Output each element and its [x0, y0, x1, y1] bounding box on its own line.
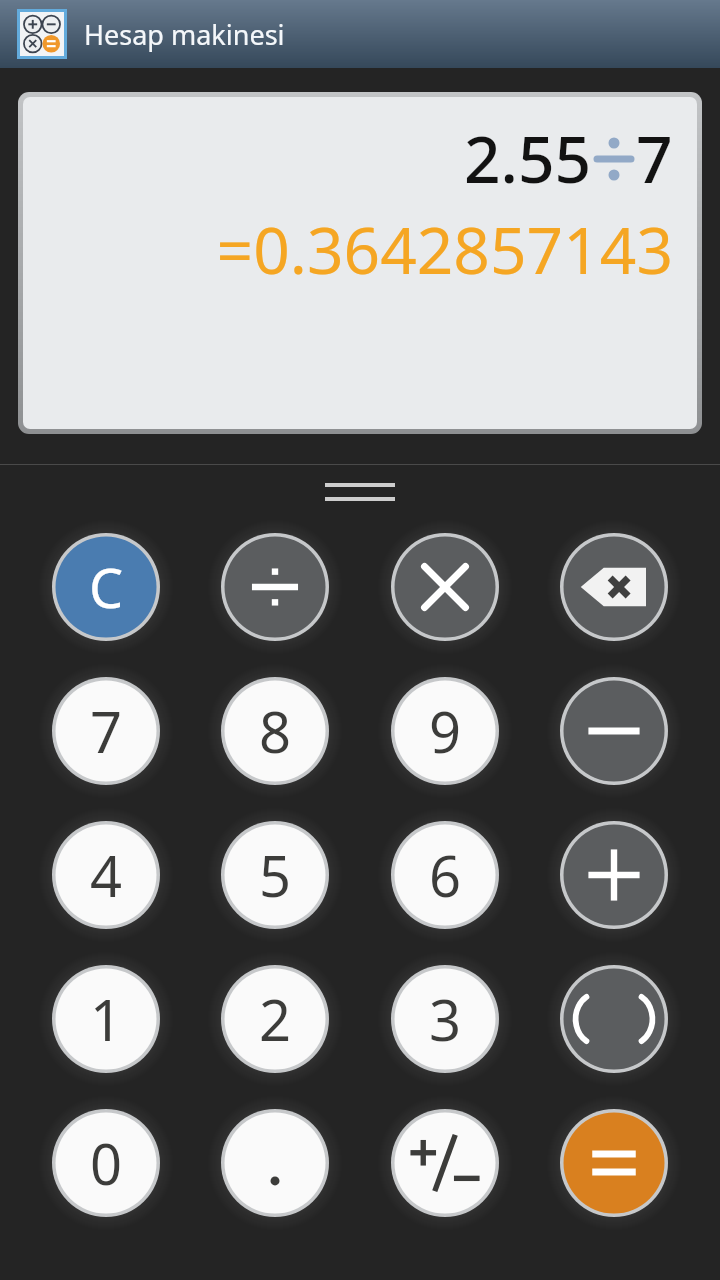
staticText: 7 [636, 115, 673, 202]
staticText: 4 [90, 837, 123, 913]
staticText: 3 [429, 981, 462, 1057]
staticText: 2 [259, 981, 292, 1057]
staticText: 2.55 [464, 115, 592, 202]
button[interactable]: 0 [42, 1099, 170, 1227]
button[interactable]: 9 [381, 667, 509, 795]
button[interactable]: 3 [381, 955, 509, 1083]
staticText: 7 [90, 693, 123, 769]
button[interactable]: C [42, 523, 170, 651]
button[interactable]: 8 [211, 667, 339, 795]
staticText: 0 [90, 1125, 123, 1201]
staticText: 9 [429, 693, 462, 769]
staticText: 5 [259, 837, 292, 913]
button[interactable]: Multiply [381, 523, 509, 651]
button[interactable]: 7 [42, 667, 170, 795]
button[interactable]: Divide [211, 523, 339, 651]
button[interactable]: 4 [42, 811, 170, 939]
button[interactable]: 2 [211, 955, 339, 1083]
button[interactable]: Minus [550, 667, 678, 795]
button[interactable]: Plus [550, 811, 678, 939]
button[interactable]: 1 [42, 955, 170, 1083]
button[interactable]: Plus minus [381, 1099, 509, 1227]
button[interactable]: Parentheses [550, 955, 678, 1083]
button[interactable]: Decimal point [211, 1099, 339, 1227]
staticText: Hesap makinesi [84, 16, 285, 53]
button[interactable]: 5 [211, 811, 339, 939]
button[interactable]: Equals [550, 1099, 678, 1227]
button[interactable]: 6 [381, 811, 509, 939]
staticText: 6 [429, 837, 462, 913]
staticText: =0.3642857143 [23, 206, 673, 293]
staticText: C [89, 550, 124, 624]
staticText: 1 [90, 981, 123, 1057]
staticText: 8 [259, 693, 292, 769]
button[interactable]: Backspace [550, 523, 678, 651]
